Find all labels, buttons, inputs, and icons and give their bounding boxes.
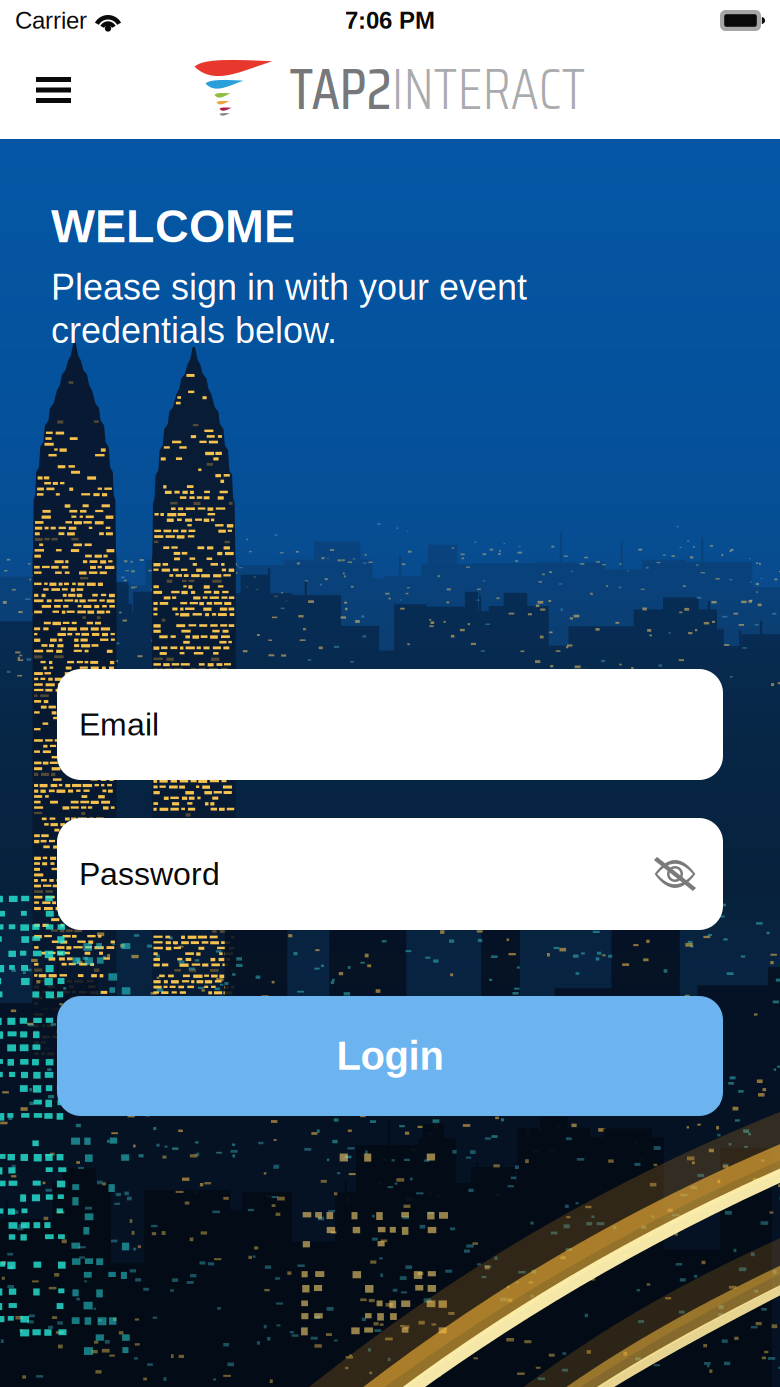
button[interactable]: Login	[57, 996, 723, 1116]
staticText: TAP2	[289, 44, 391, 134]
button[interactable]: Menu	[0, 59, 93, 121]
staticText: Password	[79, 856, 220, 892]
staticText: Login	[336, 1034, 443, 1078]
button[interactable]: Show password	[644, 847, 698, 900]
staticText: Carrier	[15, 7, 87, 34]
staticText: INTERACT	[391, 44, 585, 134]
staticText: WELCOME	[51, 200, 295, 252]
staticText: 7:06 PM	[345, 7, 435, 34]
staticText: credentials below.	[51, 310, 337, 351]
staticText: Please sign in with your event	[51, 267, 527, 307]
staticText: Email	[79, 707, 159, 742]
